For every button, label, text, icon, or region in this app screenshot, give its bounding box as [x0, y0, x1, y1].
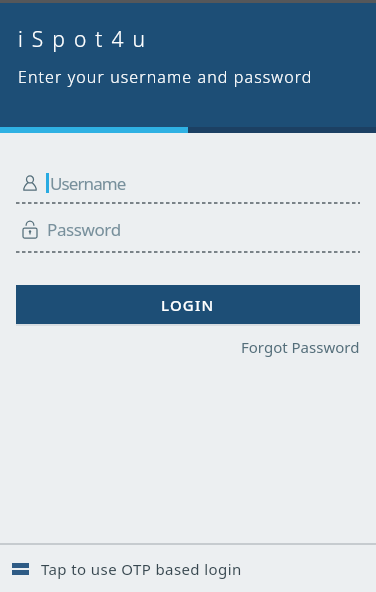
staticText: LOGIN	[161, 295, 215, 315]
button[interactable]: Password	[16, 218, 360, 240]
staticText: Username	[50, 172, 126, 194]
staticText: iSpot4u	[18, 25, 154, 54]
staticText: Enter your username and password	[18, 66, 313, 88]
button[interactable]: Forgot Password	[241, 337, 360, 357]
staticText: Tap to use OTP based login	[41, 559, 242, 579]
button[interactable]: Tap to use OTP based login	[0, 545, 376, 592]
button[interactable]: Username	[16, 172, 360, 194]
staticText: Password	[47, 218, 121, 240]
button[interactable]: LOGIN	[16, 285, 360, 324]
